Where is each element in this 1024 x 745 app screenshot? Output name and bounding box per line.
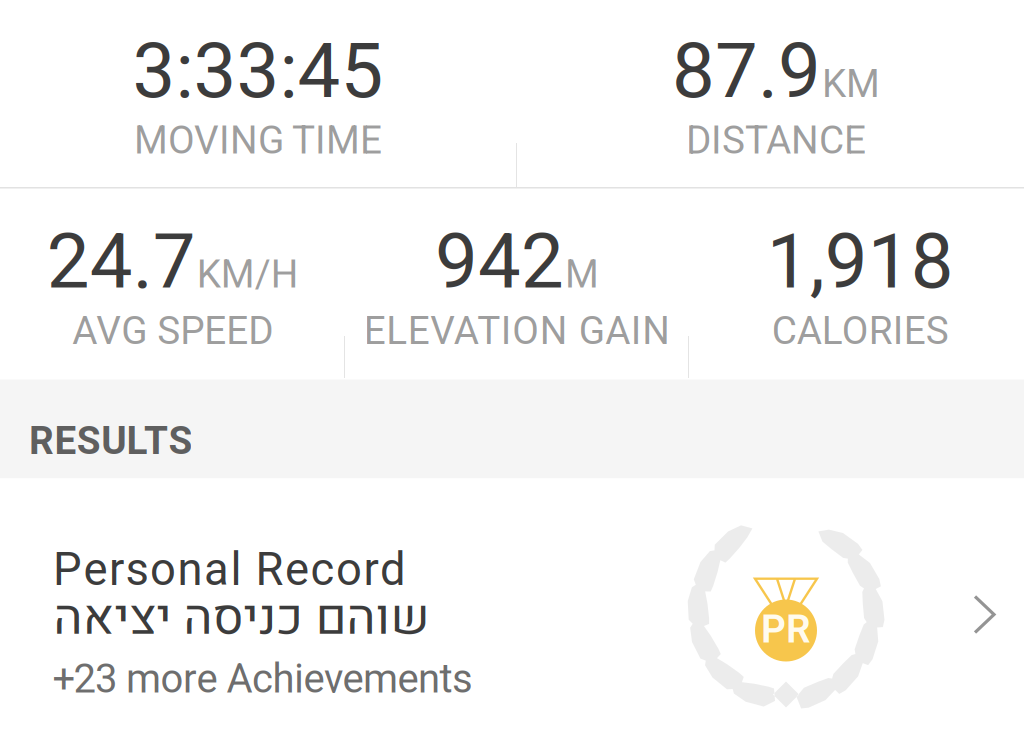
staticText: DISTANCE [686,113,866,170]
staticText: KM/H [197,247,299,304]
button[interactable]: Personal Record [0,478,1024,745]
staticText: Personal Record [53,537,406,604]
staticText: M [565,247,599,304]
staticText: 87.9 [672,17,821,129]
staticText: 3:33:45 [132,17,383,129]
staticText: שוהם כניסה יציאה [53,582,429,655]
staticText: MOVING TIME [134,113,382,170]
staticText: 1,918 [767,208,954,319]
staticText: 24.7 [47,208,196,319]
staticText: KM [822,56,880,113]
staticText: ELEVATION GAIN [364,303,670,360]
staticText: CALORIES [772,303,949,360]
staticText: +23 more Achievements [53,650,473,709]
staticText: PR [761,602,811,659]
staticText: 942 [435,208,564,319]
staticText: RESULTS [29,413,192,470]
staticText: AVG SPEED [72,303,273,360]
